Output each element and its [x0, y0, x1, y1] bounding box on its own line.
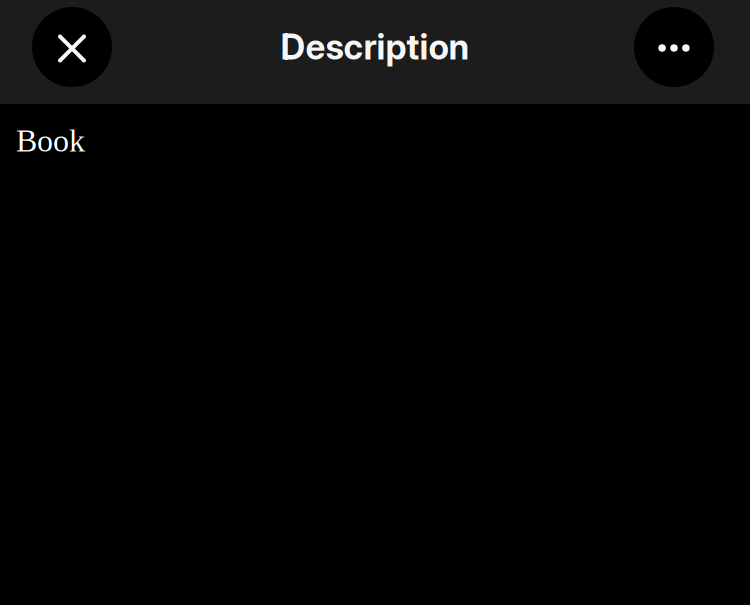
staticText: Book — [16, 123, 85, 158]
staticText: Description — [280, 26, 469, 68]
button[interactable]: More options — [634, 7, 714, 87]
button[interactable]: Close — [32, 7, 112, 87]
